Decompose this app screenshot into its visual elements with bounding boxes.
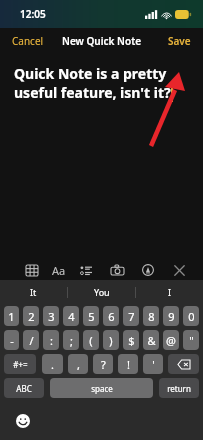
- button[interactable]: !: [118, 354, 138, 374]
- staticText: You: [94, 286, 110, 298]
- button[interactable]: Camera: [107, 260, 127, 280]
- staticText: -: [10, 333, 14, 348]
- button[interactable]: It: [0, 280, 67, 304]
- staticText: ): [109, 333, 113, 348]
- button[interactable]: ): [103, 330, 119, 350]
- button[interactable]: Table: [22, 260, 42, 280]
- button[interactable]: Close keyboard: [169, 260, 189, 280]
- button[interactable]: 4: [63, 306, 79, 326]
- staticText: space: [91, 383, 113, 394]
- button[interactable]: -: [4, 330, 19, 350]
- staticText: ABC: [16, 383, 32, 394]
- button[interactable]: ': [143, 354, 163, 374]
- button[interactable]: &: [143, 330, 159, 350]
- staticText: !: [127, 357, 130, 372]
- staticText: Quick Note is a pretty useful feature, i…: [14, 64, 171, 102]
- staticText: 7: [128, 309, 135, 324]
- button[interactable]: Cancel: [0, 30, 56, 52]
- button[interactable]: .: [42, 354, 63, 374]
- button[interactable]: 7: [123, 306, 139, 326]
- staticText: I: [168, 286, 172, 298]
- button[interactable]: @: [163, 330, 179, 350]
- button[interactable]: ,: [68, 354, 88, 374]
- button[interactable]: 3: [43, 306, 59, 326]
- staticText: ": [189, 333, 194, 348]
- staticText: 8: [148, 309, 155, 324]
- staticText: .: [51, 357, 54, 372]
- staticText: $: [128, 333, 135, 348]
- staticText: 6: [108, 309, 115, 324]
- button[interactable]: Emoji: [14, 412, 32, 430]
- button[interactable]: 0: [183, 306, 199, 326]
- button[interactable]: 2: [23, 306, 39, 326]
- button[interactable]: return: [159, 378, 199, 398]
- staticText: 2: [28, 309, 35, 324]
- button[interactable]: 8: [143, 306, 159, 326]
- button[interactable]: 1: [4, 306, 19, 326]
- staticText: 5: [88, 309, 95, 324]
- button[interactable]: You: [68, 280, 135, 304]
- staticText: Cancel: [12, 34, 44, 48]
- staticText: /: [29, 333, 34, 348]
- button[interactable]: space: [50, 378, 153, 398]
- button[interactable]: 6: [103, 306, 119, 326]
- staticText: ?: [101, 357, 106, 372]
- button[interactable]: (: [83, 330, 99, 350]
- staticText: &: [147, 333, 156, 348]
- staticText: 1: [8, 309, 15, 324]
- staticText: 9: [168, 309, 175, 324]
- staticText: It: [30, 286, 37, 298]
- button[interactable]: Markup: [138, 260, 158, 280]
- button[interactable]: I: [136, 280, 203, 304]
- staticText: return: [167, 383, 191, 394]
- staticText: ,: [77, 357, 80, 372]
- button[interactable]: ;: [63, 330, 79, 350]
- staticText: 12:05: [20, 7, 46, 21]
- button[interactable]: ": [183, 330, 199, 350]
- button[interactable]: #+=: [4, 354, 36, 374]
- staticText: 0: [188, 309, 195, 324]
- button[interactable]: /: [23, 330, 39, 350]
- staticText: @: [166, 333, 176, 348]
- button[interactable]: ABC: [4, 378, 44, 398]
- staticText: New Quick Note: [62, 34, 142, 48]
- button[interactable]: Checklist: [76, 260, 96, 280]
- button[interactable]: Save: [156, 30, 203, 52]
- staticText: :: [50, 333, 53, 348]
- staticText: ;: [70, 333, 73, 348]
- staticText: ': [152, 357, 155, 372]
- button[interactable]: :: [43, 330, 59, 350]
- button[interactable]: Text format: [52, 263, 66, 278]
- button[interactable]: Backspace: [168, 354, 199, 374]
- button[interactable]: ?: [93, 354, 113, 374]
- staticText: 4: [68, 309, 75, 324]
- button[interactable]: 9: [163, 306, 179, 326]
- staticText: 3: [48, 309, 55, 324]
- staticText: (: [89, 333, 93, 348]
- staticText: Aa: [52, 263, 66, 278]
- button[interactable]: 5: [83, 306, 99, 326]
- staticText: Save: [168, 34, 191, 48]
- staticText: #+=: [13, 359, 28, 370]
- button[interactable]: $: [123, 330, 139, 350]
